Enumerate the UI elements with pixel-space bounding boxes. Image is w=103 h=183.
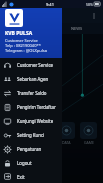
button[interactable]: Kunjungi Website [0, 114, 62, 128]
button[interactable]: NEWS [51, 23, 103, 34]
staticText: Setting Kunci Aplikasi [17, 132, 60, 138]
staticText: GAME [84, 140, 94, 145]
button[interactable]: Sebarkan Agen [0, 72, 62, 86]
button[interactable] [80, 122, 97, 139]
staticText: 58% [86, 2, 93, 7]
button[interactable]: HISTORY [0, 23, 51, 34]
staticText: Telegram : @OLXpulsa [5, 48, 47, 53]
button[interactable]: Pengaturan [0, 142, 62, 156]
button[interactable]: Logout [0, 156, 62, 170]
staticText: Logout [17, 160, 32, 166]
staticText: Telp : 082190040** [5, 43, 41, 48]
staticText: 9:41 [46, 2, 54, 7]
staticText: Exit [17, 174, 25, 180]
staticText: Customer Service [5, 38, 38, 43]
staticText: Pengirim Terdaftar [17, 104, 56, 110]
staticText: Kunjungi Website [17, 118, 54, 124]
staticText: Pengaturan [17, 146, 42, 152]
staticText: KVB PULSA [5, 30, 33, 37]
button[interactable]: Transfer Saldo [0, 86, 62, 100]
staticText: Sebarkan Agen [17, 76, 49, 82]
button[interactable]: Setting Kunci Aplikasi [0, 128, 62, 142]
button[interactable]: More options [89, 11, 99, 21]
staticText: HISTORY [17, 26, 34, 31]
button[interactable] [58, 122, 75, 139]
button[interactable]: Exit [0, 170, 62, 183]
staticText: DATA [62, 140, 71, 145]
button[interactable]: Customer Service [0, 58, 62, 72]
staticText: Customer Service [17, 62, 54, 68]
staticText: NEWS [71, 26, 83, 31]
staticText: Transfer Saldo [17, 90, 47, 96]
button[interactable]: Pengirim Terdaftar [0, 100, 62, 114]
